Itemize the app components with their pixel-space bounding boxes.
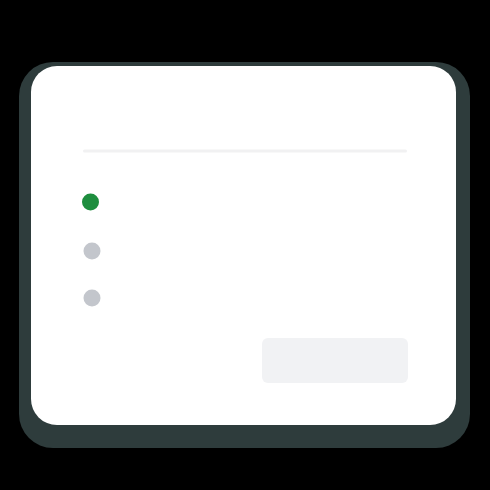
button[interactable]: Card [0,0,490,490]
